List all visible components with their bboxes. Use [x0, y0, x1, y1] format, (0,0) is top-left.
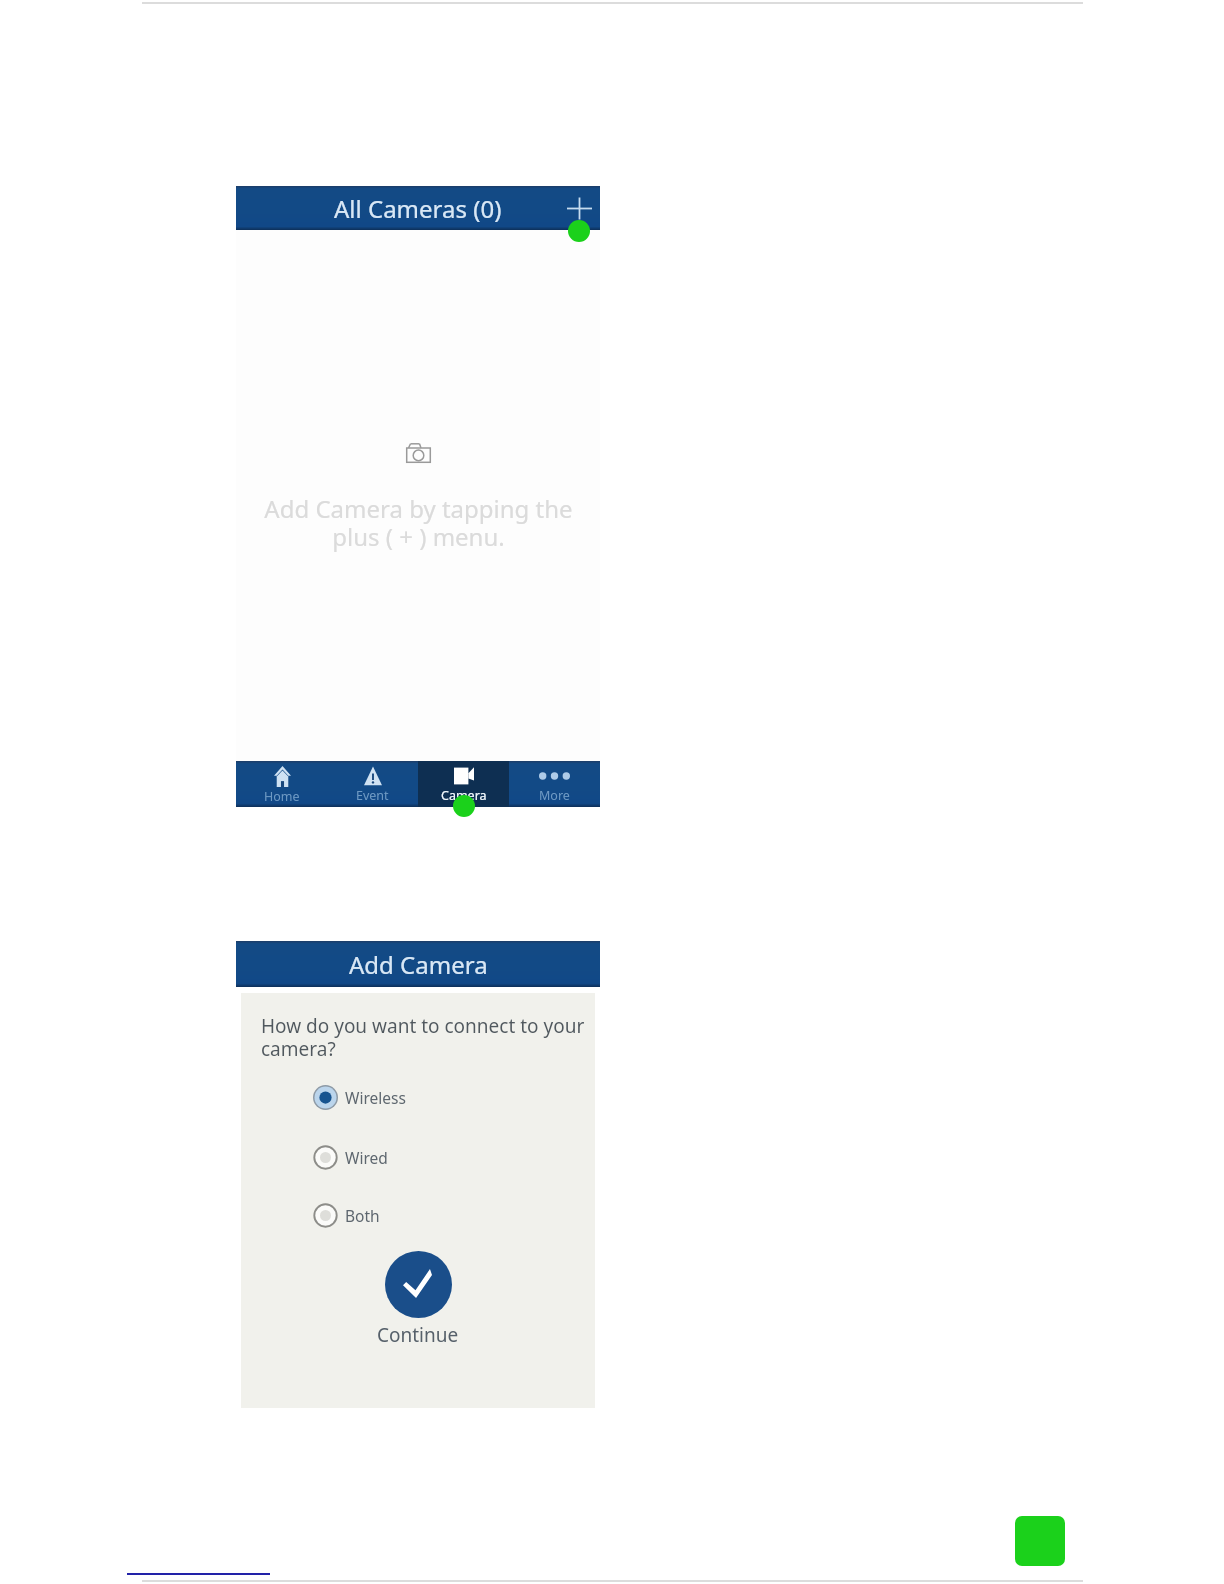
staticText: All Cameras (0)	[334, 192, 502, 225]
button[interactable]: All Cameras (0)	[236, 186, 600, 230]
button[interactable]: Wired	[313, 1145, 388, 1170]
staticText: Add Camera by tapping the plus ( + ) men…	[264, 492, 573, 553]
button[interactable]: Both	[313, 1203, 380, 1228]
staticText: Event	[356, 787, 389, 804]
staticText: Wired	[345, 1147, 388, 1168]
button[interactable]: Add Camera	[236, 941, 600, 987]
button[interactable]: Add camera	[564, 193, 594, 223]
staticText: Add Camera	[349, 948, 488, 981]
button[interactable]: Continue	[385, 1251, 452, 1318]
button[interactable]: Wireless	[313, 1085, 406, 1110]
button[interactable]: Camera	[418, 761, 509, 807]
staticText: How do you want to connect to your camer…	[261, 1013, 585, 1062]
staticText: Continue	[377, 1322, 459, 1348]
staticText: Both	[345, 1205, 380, 1226]
staticText: Wireless	[345, 1087, 406, 1108]
button[interactable]: More	[509, 761, 600, 807]
staticText: More	[539, 787, 570, 804]
button[interactable]: Home	[236, 761, 327, 807]
staticText: Home	[264, 788, 300, 805]
button[interactable]: Event	[327, 761, 418, 807]
staticText: Camera	[441, 787, 487, 804]
